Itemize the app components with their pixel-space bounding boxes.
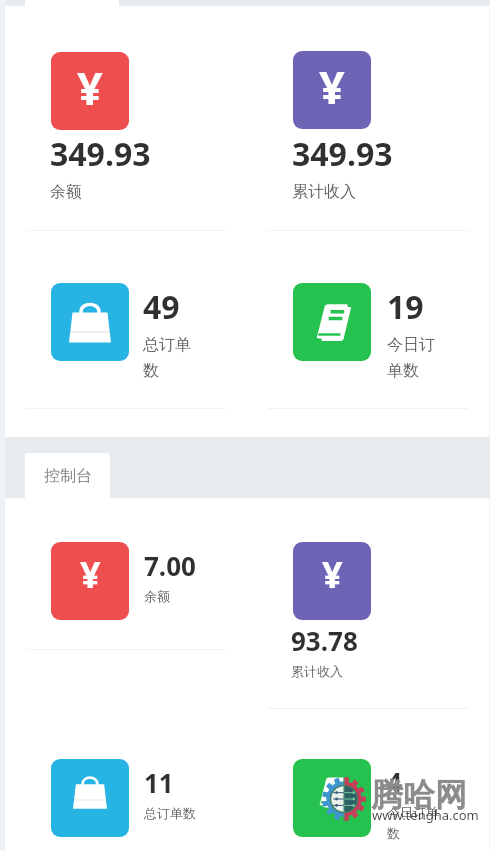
staticText: 4 [387,764,402,799]
staticText: 累计收入 [291,663,343,679]
button[interactable]: 349.93 [292,132,472,202]
button[interactable]: Cumulative income [293,51,371,129]
button[interactable]: 349.93 [50,132,230,202]
staticText: 今日订单数 [387,335,443,381]
staticText: 49 [143,285,180,329]
staticText: 总订单数 [144,805,196,821]
button[interactable]: Today orders [293,283,371,361]
staticText: 11 [144,765,174,800]
staticText: 累计收入 [292,182,356,202]
button[interactable]: 49 [143,285,199,381]
staticText: 93.78 [291,623,358,658]
staticText: 余额 [50,182,82,202]
staticText: ¥ [319,56,345,117]
staticText: 今日订单数 [387,804,449,842]
staticText: 腾哈网 [371,775,467,815]
staticText: 349.93 [50,132,151,176]
staticText: 7.00 [144,548,196,583]
button[interactable]: 4 [387,764,449,842]
staticText: 总订单数 [143,335,199,381]
button[interactable]: Total orders [51,759,129,837]
button[interactable]: 19 [387,285,443,381]
staticText: ¥ [322,550,343,599]
button[interactable]: Today orders [293,759,371,837]
staticText: 349.93 [292,132,393,176]
button[interactable]: 控制台 [25,453,110,499]
staticText: ¥ [77,57,103,118]
staticText: 余额 [144,588,170,604]
button[interactable]: Total orders [51,283,129,361]
button[interactable]: Balance [51,52,129,130]
button[interactable]: Balance [51,542,129,620]
staticText: 控制台 [44,466,92,486]
staticText: ¥ [80,550,101,599]
button[interactable]: Cumulative income [293,542,371,620]
button[interactable]: 7.00 [144,548,224,604]
staticText: 19 [387,285,424,329]
staticText: www.tengha.com [372,806,479,824]
button[interactable]: 11 [144,765,234,821]
button[interactable]: 93.78 [291,623,471,679]
